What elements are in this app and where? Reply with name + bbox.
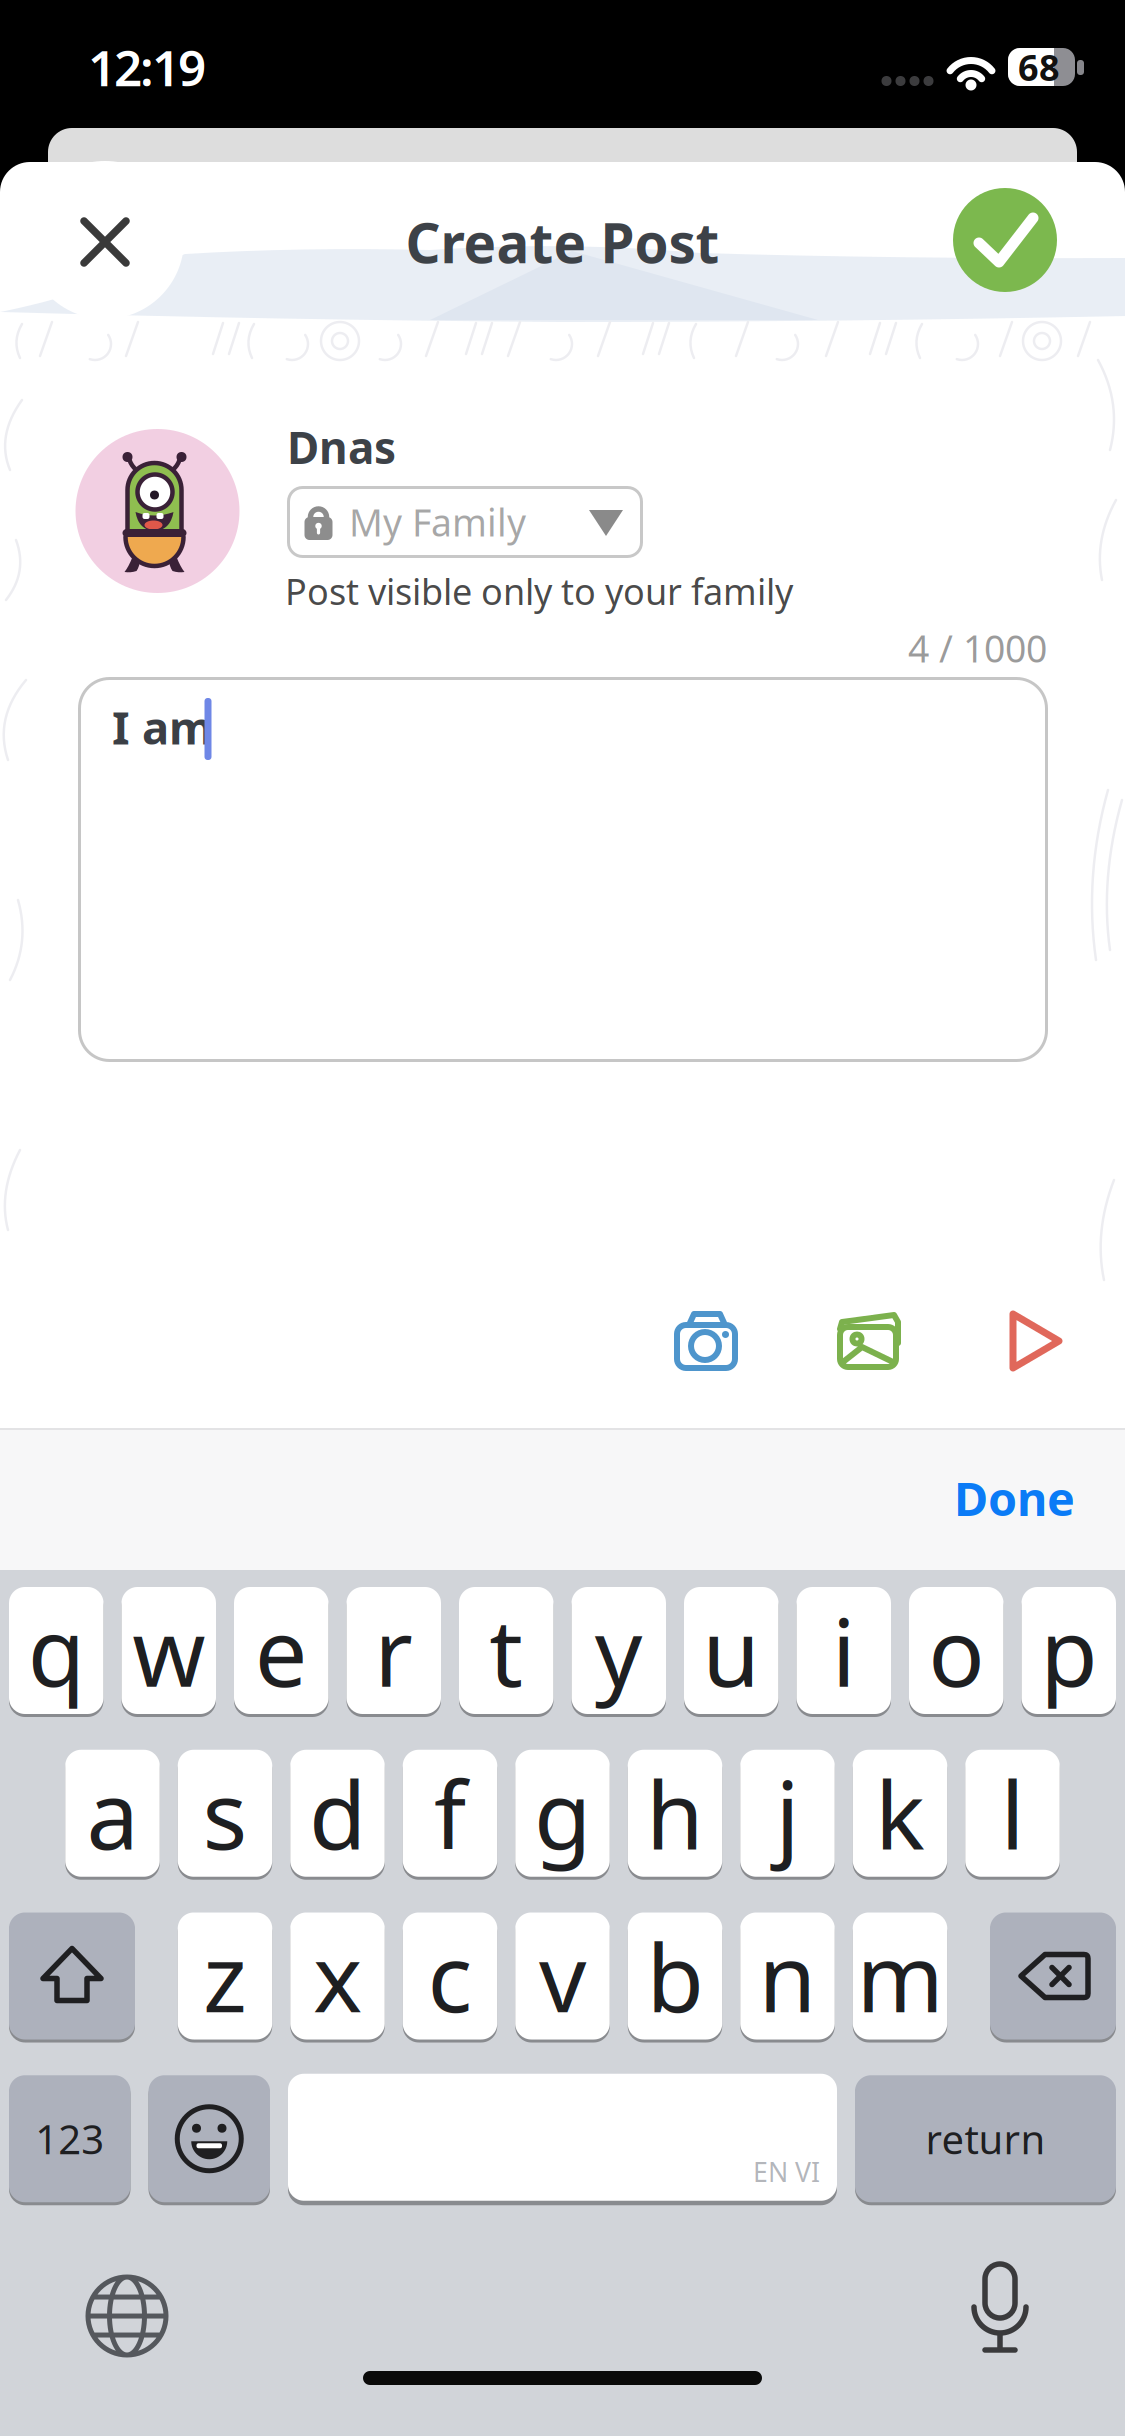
staticText: l [1000,1751,1024,1875]
button[interactable]: f [403,1748,497,1878]
button[interactable]: k [853,1748,947,1878]
staticText: Create Post [405,206,719,278]
button[interactable]: w [121,1585,216,1715]
staticText: n [758,1914,816,2038]
staticText: return [925,2112,1045,2165]
staticText: Post visible only to your family [285,567,793,615]
button[interactable]: y [571,1585,666,1715]
button[interactable]: u [684,1585,778,1715]
button[interactable]: s [178,1748,272,1878]
button[interactable]: My Family [287,486,643,558]
staticText: u [702,1588,760,1712]
button[interactable]: Delete [990,1911,1116,2041]
staticText: y [595,1588,643,1712]
button[interactable]: v [515,1911,610,2041]
button[interactable]: l [965,1748,1060,1878]
staticText: g [534,1751,591,1875]
staticText: 68 [1018,43,1060,91]
button[interactable]: t [459,1585,553,1715]
button[interactable]: e [234,1585,328,1715]
button[interactable]: j [740,1748,835,1878]
button[interactable]: g [515,1748,610,1878]
staticText: o [928,1588,984,1712]
button[interactable]: r [346,1585,441,1715]
button[interactable]: Shift [9,1911,135,2041]
staticText: s [202,1751,247,1875]
staticText: j [775,1751,799,1875]
staticText: 12:19 [88,34,206,100]
staticText: z [203,1914,247,2038]
button[interactable]: b [628,1911,722,2041]
button[interactable]: m [853,1911,947,2041]
staticText: Dnas [287,418,396,476]
staticText: d [309,1751,366,1875]
staticText: Done [954,1467,1075,1529]
button[interactable]: 123 [9,2074,130,2204]
staticText: 4 / 1000 [908,623,1047,673]
staticText: c [427,1914,472,2038]
staticText: w [132,1588,205,1712]
button[interactable]: Post [953,188,1057,292]
staticText: I am [112,697,213,757]
button[interactable]: p [1021,1585,1116,1715]
button[interactable]: z [178,1911,272,2041]
staticText: t [489,1588,523,1712]
staticText: k [875,1751,925,1875]
button[interactable]: return [855,2074,1116,2204]
button[interactable]: x [290,1911,385,2041]
staticText: b [646,1914,703,2038]
staticText: r [374,1588,413,1712]
button[interactable]: Space [288,2074,837,2204]
staticText: i [832,1588,856,1712]
staticText: a [86,1751,138,1875]
button[interactable]: Done [775,1463,1075,1533]
staticText: p [1040,1588,1097,1712]
button[interactable]: d [290,1748,385,1878]
button[interactable]: Take photo [666,1301,746,1381]
staticText: 123 [35,2112,104,2165]
button[interactable]: n [740,1911,835,2041]
staticText: e [255,1588,308,1712]
button[interactable]: q [9,1585,103,1715]
button[interactable]: i [796,1585,891,1715]
button[interactable]: h [628,1748,722,1878]
staticText: My Family [349,497,526,547]
staticText: m [856,1914,943,2038]
button[interactable]: Add video [995,1301,1075,1381]
button[interactable]: a [65,1748,160,1878]
button[interactable]: o [909,1585,1003,1715]
staticText: q [28,1588,85,1712]
button[interactable]: Dictate [955,2262,1045,2362]
button[interactable]: c [403,1911,497,2041]
button[interactable]: Choose photo [828,1301,908,1381]
staticText: v [539,1914,586,2038]
button[interactable]: Switch keyboard [82,2271,172,2361]
button[interactable]: Close [54,191,156,293]
button[interactable]: Emoji [148,2074,270,2204]
staticText: f [434,1751,466,1875]
staticText: EN VI [753,2154,820,2189]
staticText: x [313,1914,362,2038]
staticText: h [646,1751,704,1875]
